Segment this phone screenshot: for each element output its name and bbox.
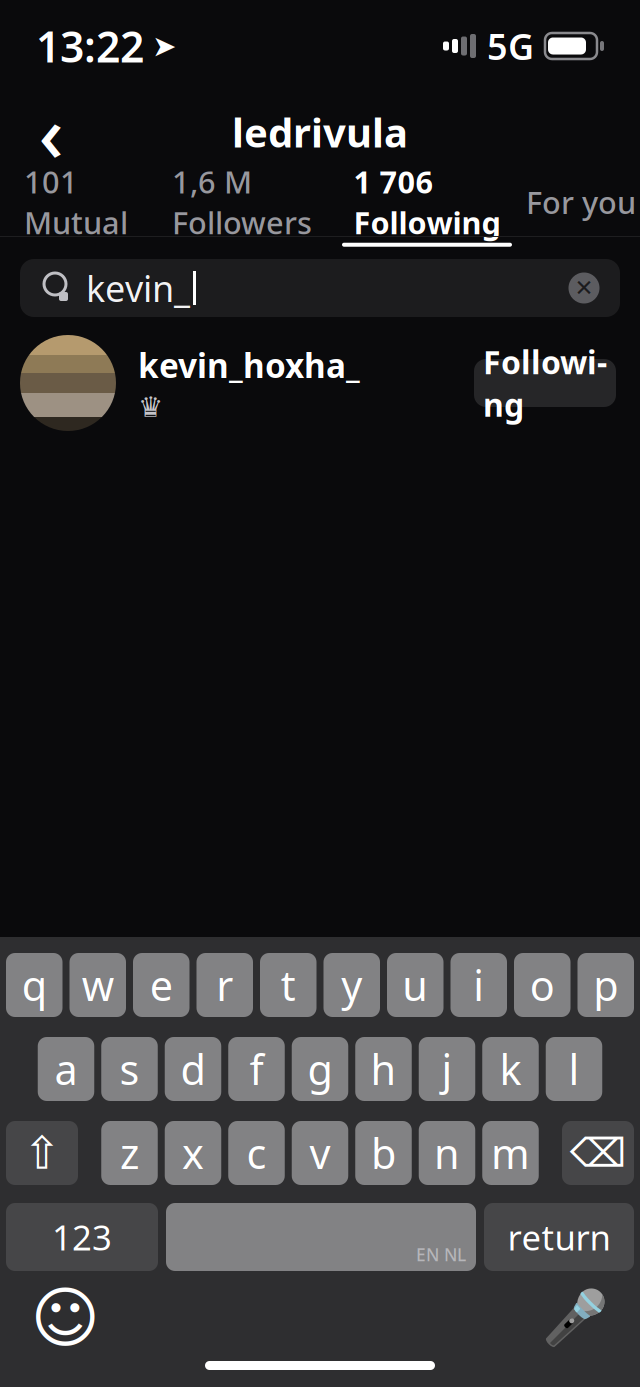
staticText: 1,6 M Followers: [172, 161, 312, 243]
button[interactable]: m: [482, 1121, 539, 1185]
button[interactable]: d: [165, 1037, 221, 1101]
button[interactable]: Dictation: [538, 1281, 612, 1355]
button[interactable]: p: [577, 953, 634, 1017]
button[interactable]: c: [228, 1121, 285, 1185]
staticText: ♛: [138, 391, 163, 423]
staticText: k: [499, 1042, 521, 1096]
staticText: For you: [526, 182, 636, 222]
staticText: w: [82, 958, 114, 1012]
button[interactable]: t: [260, 953, 316, 1017]
staticText: q: [22, 958, 47, 1012]
staticText: i: [473, 958, 484, 1012]
button[interactable]: f: [228, 1037, 285, 1101]
staticText: l: [568, 1042, 579, 1096]
staticText: 🎤: [542, 1287, 608, 1348]
staticText: o: [530, 958, 555, 1012]
staticText: 123: [52, 1214, 112, 1260]
staticText: v: [309, 1126, 330, 1180]
button[interactable]: q: [6, 953, 62, 1017]
button[interactable]: v: [292, 1121, 348, 1185]
staticText: ⇧: [23, 1127, 61, 1179]
staticText: c: [246, 1126, 266, 1180]
staticText: 13:22: [36, 18, 144, 74]
button[interactable]: n: [419, 1121, 475, 1185]
staticText: Following: [483, 340, 607, 425]
button[interactable]: i: [450, 953, 507, 1017]
button[interactable]: u: [387, 953, 443, 1017]
staticText: r: [216, 958, 233, 1012]
button[interactable]: Delete: [562, 1121, 634, 1185]
staticText: EN NL: [416, 1243, 466, 1266]
button[interactable]: x: [165, 1121, 221, 1185]
button[interactable]: e: [133, 953, 189, 1017]
staticText: ⌫: [569, 1130, 626, 1176]
staticText: return: [507, 1214, 610, 1260]
button[interactable]: k: [482, 1037, 539, 1101]
button[interactable]: 101 Mutual: [0, 172, 152, 236]
staticText: 5G: [487, 22, 534, 70]
staticText: e: [150, 958, 173, 1012]
staticText: 101 Mutual: [24, 161, 128, 243]
button[interactable]: 1,6 M Followers: [152, 172, 332, 236]
staticText: m: [491, 1126, 530, 1180]
staticText: a: [54, 1042, 77, 1096]
button[interactable]: o: [514, 953, 570, 1017]
staticText: p: [593, 958, 618, 1012]
staticText: h: [370, 1042, 396, 1096]
button[interactable]: 123: [6, 1203, 158, 1271]
staticText: ledrivula: [232, 105, 408, 158]
button[interactable]: r: [196, 953, 253, 1017]
button[interactable]: l: [546, 1037, 602, 1101]
button[interactable]: Shift: [6, 1121, 78, 1185]
staticText: g: [307, 1042, 332, 1096]
staticText: ➤: [152, 29, 177, 63]
button[interactable]: z: [101, 1121, 158, 1185]
staticText: ✕: [574, 275, 593, 301]
staticText: b: [371, 1126, 396, 1180]
staticText: kevin_hoxha_: [138, 343, 360, 387]
staticText: z: [120, 1126, 139, 1180]
staticText: j: [441, 1042, 452, 1096]
staticText: u: [402, 958, 428, 1012]
staticText: ‹: [38, 81, 63, 183]
button[interactable]: Back: [16, 96, 86, 168]
button[interactable]: Clear search: [557, 261, 611, 315]
button[interactable]: a: [38, 1037, 94, 1101]
button[interactable]: For you: [522, 172, 640, 236]
button[interactable]: return: [484, 1203, 634, 1271]
button[interactable]: y: [323, 953, 380, 1017]
staticText: n: [434, 1126, 460, 1180]
button[interactable]: j: [419, 1037, 475, 1101]
staticText: d: [180, 1042, 205, 1096]
staticText: t: [281, 958, 296, 1012]
button[interactable]: s: [101, 1037, 158, 1101]
staticText: f: [249, 1042, 263, 1096]
staticText: s: [119, 1042, 139, 1096]
button[interactable]: Emoji: [28, 1281, 102, 1355]
staticText: x: [182, 1126, 204, 1180]
staticText: y: [341, 958, 362, 1012]
staticText: 1 706 Following: [353, 161, 500, 243]
button[interactable]: kevin_hoxha_: [0, 317, 640, 431]
button[interactable]: Space: [166, 1203, 476, 1271]
button[interactable]: b: [355, 1121, 412, 1185]
staticText: kevin_: [86, 264, 190, 312]
button[interactable]: 1 706 Following: [332, 172, 522, 236]
staticText: ☺: [30, 1280, 99, 1356]
button[interactable]: h: [355, 1037, 412, 1101]
button[interactable]: g: [292, 1037, 348, 1101]
button[interactable]: w: [69, 953, 126, 1017]
